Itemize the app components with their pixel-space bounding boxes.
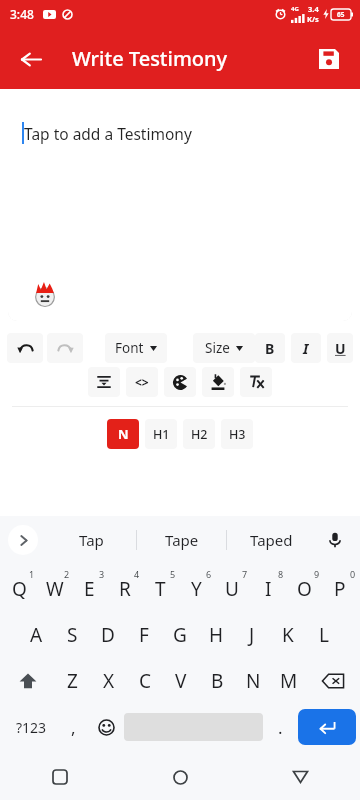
button[interactable]: E — [72, 566, 107, 612]
staticText: L — [319, 622, 329, 648]
button[interactable]: T — [142, 566, 178, 612]
button[interactable]: Voice input — [320, 525, 350, 555]
button[interactable]: P — [322, 566, 358, 612]
button[interactable]: V — [163, 658, 199, 704]
button[interactable]: Backspace — [307, 658, 358, 704]
staticText: W — [46, 576, 64, 602]
staticText: V — [175, 668, 187, 694]
staticText: Tap — [79, 530, 104, 550]
button[interactable]: X — [91, 658, 127, 704]
staticText: , — [71, 716, 76, 739]
staticText: 0 — [350, 568, 356, 580]
staticText: 9 — [314, 568, 320, 580]
staticText: Size — [205, 339, 230, 357]
staticText: 3:48 — [10, 6, 34, 22]
button[interactable]: Tape — [137, 516, 226, 564]
staticText: <> — [135, 374, 149, 390]
staticText: E — [84, 576, 95, 602]
button[interactable]: More suggestions — [8, 525, 38, 555]
button[interactable]: N — [235, 658, 271, 704]
button[interactable]: Font — [105, 333, 167, 363]
button[interactable]: Comma — [58, 707, 89, 747]
staticText: N — [118, 425, 129, 443]
staticText: U — [225, 576, 239, 602]
staticText: T — [155, 576, 166, 602]
button[interactable]: G — [162, 612, 198, 658]
staticText: ?123 — [16, 718, 47, 737]
staticText: K — [282, 622, 294, 648]
staticText: C — [139, 668, 152, 694]
staticText: 4 — [134, 568, 140, 580]
button[interactable]: W — [37, 566, 72, 612]
button[interactable]: Enter — [298, 709, 356, 745]
button[interactable]: F — [126, 612, 162, 658]
button[interactable]: Back — [277, 754, 323, 800]
button[interactable]: Y — [178, 566, 214, 612]
button[interactable]: Taped — [227, 516, 316, 564]
staticText: 6 — [206, 568, 212, 580]
button[interactable]: J — [234, 612, 270, 658]
button[interactable]: U — [214, 566, 250, 612]
button[interactable]: Tap — [46, 516, 136, 564]
button[interactable]: Save — [308, 38, 350, 80]
staticText: X — [103, 668, 115, 694]
staticText: 2 — [64, 568, 70, 580]
button[interactable]: Bold — [255, 333, 285, 363]
button[interactable]: Period — [263, 707, 298, 747]
button[interactable]: Underline — [327, 333, 353, 363]
button[interactable]: Undo — [7, 333, 43, 363]
staticText: 7 — [242, 568, 248, 580]
staticText: 1 — [29, 568, 35, 580]
button[interactable]: Line spacing — [88, 367, 120, 397]
button[interactable]: B — [199, 658, 235, 704]
staticText: N — [246, 668, 261, 694]
staticText: H3 — [229, 426, 246, 443]
button[interactable]: Shift — [2, 658, 54, 704]
staticText: Font — [115, 339, 144, 357]
button[interactable]: K — [270, 612, 306, 658]
button[interactable]: M — [271, 658, 307, 704]
button[interactable]: Redo — [47, 333, 83, 363]
button[interactable]: Z — [54, 658, 91, 704]
button[interactable]: Size — [193, 333, 255, 363]
staticText: M — [280, 668, 298, 694]
button[interactable]: ?123 — [4, 707, 58, 747]
button[interactable]: H2 — [183, 419, 215, 449]
button[interactable]: I — [250, 566, 286, 612]
staticText: F — [139, 622, 149, 648]
button[interactable]: S — [54, 612, 90, 658]
button[interactable]: H1 — [145, 419, 177, 449]
staticText: R — [119, 576, 131, 602]
staticText: H — [209, 622, 224, 648]
button[interactable]: A — [18, 612, 54, 658]
staticText: P — [334, 576, 346, 602]
staticText: H2 — [191, 426, 208, 443]
button[interactable]: Recents — [37, 754, 83, 800]
button[interactable]: Tap to add a Testimony — [8, 97, 352, 321]
button[interactable]: N — [107, 419, 139, 449]
button[interactable]: Back — [8, 36, 54, 82]
button[interactable]: R — [107, 566, 142, 612]
staticText: B — [211, 668, 224, 694]
button[interactable]: O — [286, 566, 322, 612]
button[interactable]: Italic — [291, 333, 321, 363]
button[interactable]: D — [90, 612, 126, 658]
staticText: J — [249, 622, 255, 648]
staticText: A — [30, 622, 43, 648]
staticText: U — [335, 339, 346, 358]
staticText: . — [278, 716, 283, 739]
button[interactable]: Home — [157, 754, 203, 800]
button[interactable]: L — [306, 612, 342, 658]
staticText: Y — [191, 576, 202, 602]
button[interactable]: Clear formatting — [240, 367, 272, 397]
button[interactable]: Code — [126, 367, 158, 397]
button[interactable]: C — [127, 658, 163, 704]
button[interactable]: Fill color — [202, 367, 234, 397]
staticText: Tap to add a Testimony — [24, 123, 192, 144]
button[interactable]: H — [198, 612, 234, 658]
button[interactable]: H3 — [221, 419, 253, 449]
button[interactable]: Text color — [164, 367, 196, 397]
button[interactable]: Q — [2, 566, 37, 612]
button[interactable]: Emoji — [89, 707, 124, 747]
